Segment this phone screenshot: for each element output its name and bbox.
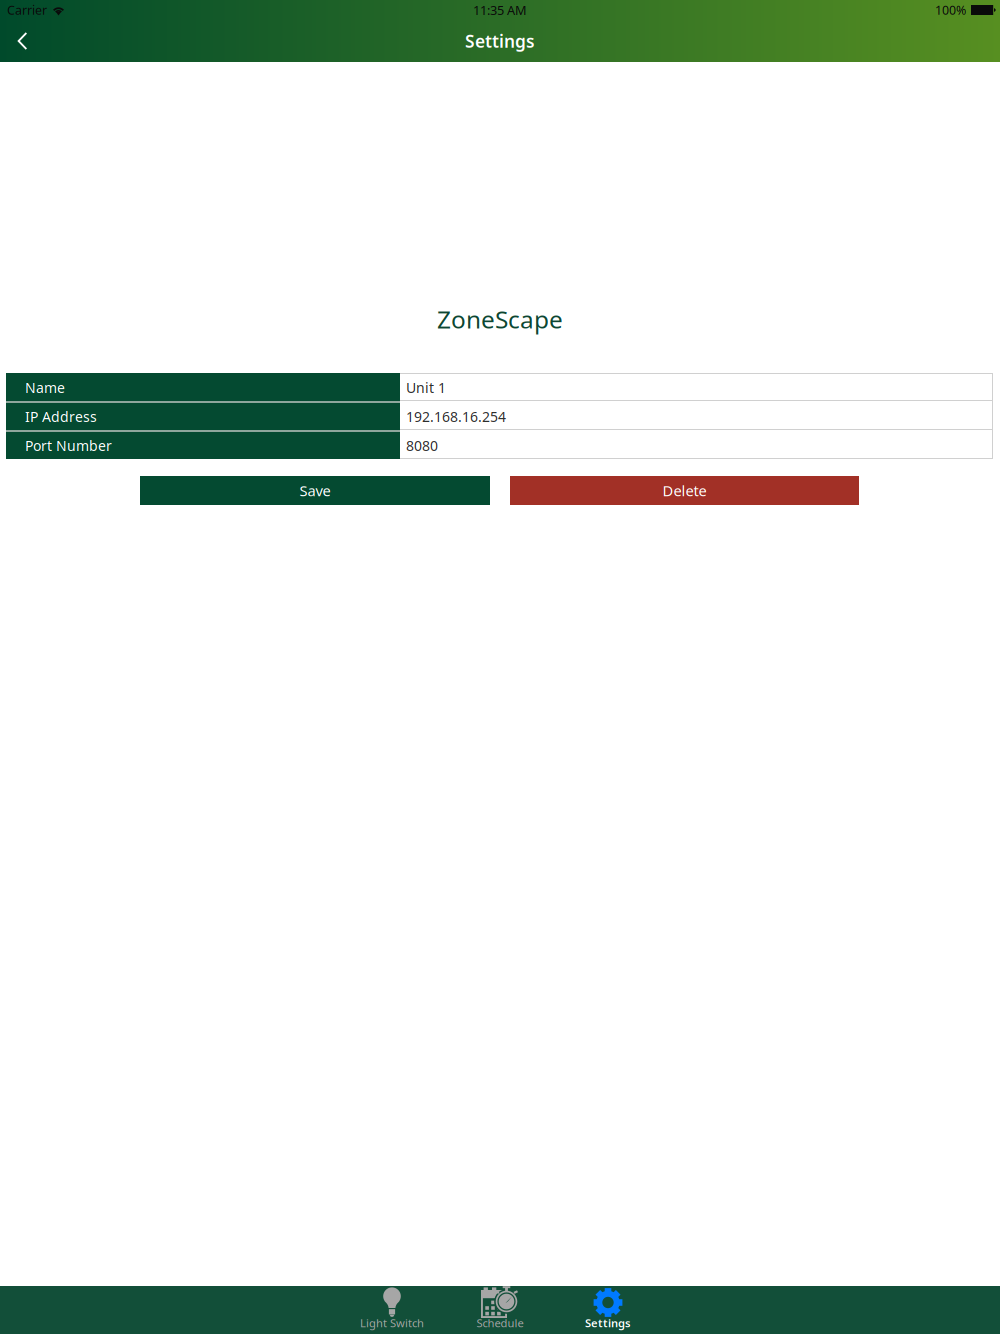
staticText: Save [299, 480, 330, 500]
button[interactable]: Port Number [6, 431, 993, 460]
button[interactable]: Schedule [446, 1286, 554, 1334]
staticText: Delete [662, 480, 706, 500]
staticText: Port Number [25, 436, 112, 455]
staticText: IP Address [25, 407, 97, 426]
button[interactable]: Settings [554, 1286, 662, 1334]
staticText: Name [25, 378, 65, 397]
staticText: 11:35 AM [473, 1, 527, 19]
staticText: Unit 1 [406, 378, 446, 397]
staticText: Settings [585, 1315, 631, 1331]
button[interactable]: Delete [510, 476, 859, 505]
button[interactable]: Back [0, 20, 44, 62]
staticText: ZoneScape [437, 302, 563, 336]
staticText: 192.168.16.254 [406, 407, 506, 426]
staticText: Settings [465, 29, 535, 53]
staticText: Light Switch [360, 1315, 424, 1331]
staticText: Schedule [476, 1315, 523, 1331]
button[interactable]: Name [6, 373, 993, 402]
staticText: 100% [935, 2, 966, 18]
button[interactable]: IP Address [6, 402, 993, 431]
staticText: 8080 [406, 436, 438, 455]
staticText: Carrier [7, 2, 47, 18]
button[interactable]: Save [140, 476, 490, 505]
button[interactable]: Light Switch [338, 1286, 446, 1334]
